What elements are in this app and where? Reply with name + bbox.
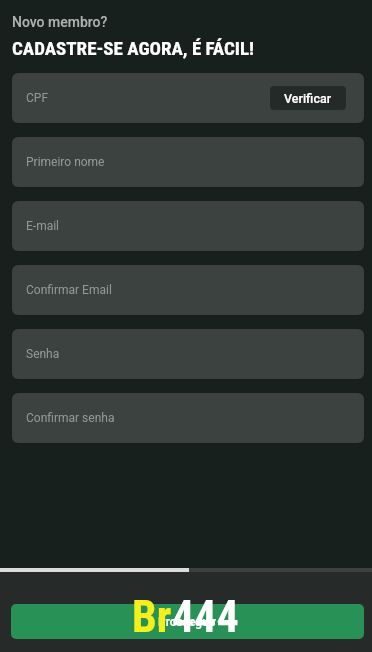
- button[interactable]: Verificar: [270, 86, 346, 110]
- button[interactable]: Confirmar Email: [12, 265, 364, 315]
- staticText: CPF: [26, 91, 49, 105]
- staticText: Verificar: [284, 91, 332, 106]
- staticText: Prosseguir: [158, 615, 217, 629]
- staticText: 444: [172, 591, 239, 643]
- button[interactable]: Senha: [12, 329, 364, 379]
- staticText: CADASTRE-SE AGORA, É FÁCIL!: [12, 37, 255, 59]
- staticText: Confirmar Email: [26, 283, 112, 297]
- staticText: Br: [132, 591, 172, 643]
- staticText: Primeiro nome: [26, 155, 105, 169]
- button[interactable]: E-mail: [12, 201, 364, 251]
- button[interactable]: Primeiro nome: [12, 137, 364, 187]
- button[interactable]: Prosseguir: [11, 604, 364, 639]
- staticText: Senha: [26, 347, 60, 361]
- button[interactable]: Confirmar senha: [12, 393, 364, 443]
- other: Br444 logo: [132, 591, 239, 643]
- button[interactable]: CPF: [12, 73, 364, 123]
- staticText: Novo membro?: [12, 14, 108, 30]
- staticText: E-mail: [26, 219, 60, 233]
- staticText: Confirmar senha: [26, 411, 115, 425]
